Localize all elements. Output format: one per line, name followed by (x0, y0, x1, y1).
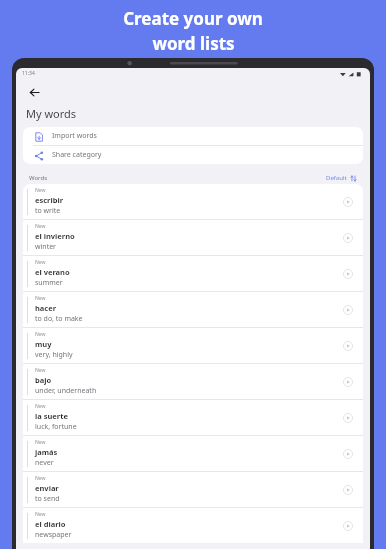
button[interactable]: New (23, 508, 363, 543)
staticText: to send (35, 494, 60, 504)
staticText: el verano (35, 267, 70, 277)
staticText: Words (29, 174, 48, 182)
button[interactable]: New (23, 472, 363, 507)
button[interactable]: Play pronunciation (341, 411, 355, 425)
staticText: New (35, 223, 46, 230)
button[interactable]: Play pronunciation (341, 303, 355, 317)
staticText: New (35, 295, 46, 302)
staticText: el invierno (35, 231, 75, 241)
staticText: el diario (35, 519, 66, 529)
staticText: newspaper (35, 530, 72, 540)
staticText: winter (35, 242, 56, 252)
button[interactable]: New (23, 256, 363, 291)
staticText: to write (35, 206, 61, 216)
button[interactable]: New (23, 292, 363, 327)
staticText: jamás (35, 447, 58, 457)
button[interactable]: Play pronunciation (341, 447, 355, 461)
button[interactable]: New (23, 364, 363, 399)
staticText: luck, fortune (35, 422, 77, 432)
button[interactable]: Play pronunciation (341, 339, 355, 353)
staticText: New (35, 259, 46, 266)
staticText: word lists (152, 32, 235, 55)
staticText: bajo (35, 375, 52, 385)
button[interactable]: Play pronunciation (341, 195, 355, 209)
button[interactable]: New (23, 328, 363, 363)
staticText: Default (326, 174, 347, 182)
button[interactable]: New (23, 184, 363, 219)
staticText: never (35, 458, 54, 468)
staticText: My words (26, 106, 77, 121)
staticText: la suerte (35, 411, 68, 421)
button[interactable]: Play pronunciation (341, 231, 355, 245)
staticText: New (35, 403, 46, 410)
staticText: New (35, 331, 46, 338)
staticText: under, underneath (35, 386, 97, 396)
staticText: 11:34 (22, 70, 35, 77)
staticText: muy (35, 339, 52, 349)
staticText: to do, to make (35, 314, 83, 324)
staticText: Create your own (123, 7, 263, 30)
button[interactable]: New (23, 400, 363, 435)
button[interactable]: Play pronunciation (341, 267, 355, 281)
staticText: New (35, 511, 46, 518)
staticText: summer (35, 278, 63, 288)
staticText: very, highly (35, 350, 73, 360)
staticText: escribir (35, 195, 64, 205)
button[interactable]: Import words (23, 127, 363, 145)
staticText: New (35, 367, 46, 374)
button[interactable]: Play pronunciation (341, 483, 355, 497)
button[interactable]: Play pronunciation (341, 375, 355, 389)
staticText: Import words (52, 131, 97, 141)
button[interactable]: Share category (23, 146, 363, 164)
staticText: hacer (35, 303, 57, 313)
staticText: enviar (35, 483, 59, 493)
staticText: Share category (52, 150, 102, 160)
staticText: New (35, 439, 46, 446)
staticText: New (35, 475, 46, 482)
button[interactable]: New (23, 436, 363, 471)
button[interactable]: New (23, 220, 363, 255)
staticText: New (35, 187, 46, 194)
button[interactable]: Play pronunciation (341, 519, 355, 533)
button[interactable]: Back (24, 82, 44, 102)
button[interactable]: Default (326, 174, 357, 182)
